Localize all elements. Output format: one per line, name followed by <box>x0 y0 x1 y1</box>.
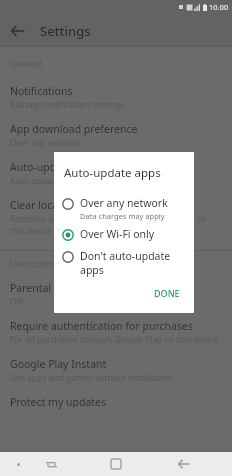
button[interactable]: Home <box>106 454 126 474</box>
staticText: Data charges may apply <box>80 211 165 221</box>
staticText: Auto-update apps over Wi-Fi only <box>10 175 143 187</box>
button[interactable]: Over any network <box>54 193 194 224</box>
staticText: Removes all the searches you have perfor… <box>10 213 222 237</box>
button[interactable]: Back <box>174 454 194 474</box>
staticText: Over any network <box>80 196 168 210</box>
staticText: Require authentication for purchases <box>10 319 193 333</box>
button[interactable]: Don't auto-update apps <box>54 246 194 280</box>
staticText: Settings <box>40 22 91 40</box>
button[interactable]: Menu <box>12 458 24 470</box>
button[interactable]: Recent apps <box>41 454 61 474</box>
staticText: Manage notification settings <box>10 99 124 111</box>
button[interactable]: Back <box>8 21 28 41</box>
staticText: Clear local search history <box>10 198 133 212</box>
button[interactable]: Notifications <box>0 82 232 120</box>
button[interactable]: App download preference <box>0 120 232 158</box>
button[interactable]: Clear local search history <box>0 196 232 246</box>
button[interactable]: Parental controls <box>0 279 232 317</box>
staticText: Protect my updates <box>10 395 107 409</box>
staticText: Parental controls <box>10 281 94 295</box>
staticText: Notifications <box>10 84 73 98</box>
staticText: User controls <box>10 258 64 270</box>
staticText: Auto-update apps <box>64 165 161 181</box>
button[interactable]: Over Wi-Fi only <box>54 224 194 246</box>
staticText: Auto-update apps <box>10 160 99 174</box>
staticText: For all purchases through Google Play on… <box>10 334 219 346</box>
staticText: 10.00 <box>209 2 229 12</box>
button[interactable]: Require authentication for purchases <box>0 317 232 355</box>
staticText: Over any network <box>10 137 82 149</box>
staticText: DONE <box>154 287 180 299</box>
button[interactable]: Google Play Instant <box>0 355 232 393</box>
staticText: Off <box>10 296 23 308</box>
button[interactable]: DONE <box>148 283 186 303</box>
staticText: Use apps and games without installation <box>10 372 173 384</box>
staticText: Over Wi-Fi only <box>80 227 155 241</box>
staticText: Don't auto-update apps <box>80 249 188 277</box>
button[interactable]: Auto-update apps <box>0 158 232 196</box>
staticText: General <box>10 58 42 70</box>
button[interactable]: Protect my updates <box>0 393 232 418</box>
staticText: App download preference <box>10 122 138 136</box>
staticText: Google Play Instant <box>10 357 107 371</box>
